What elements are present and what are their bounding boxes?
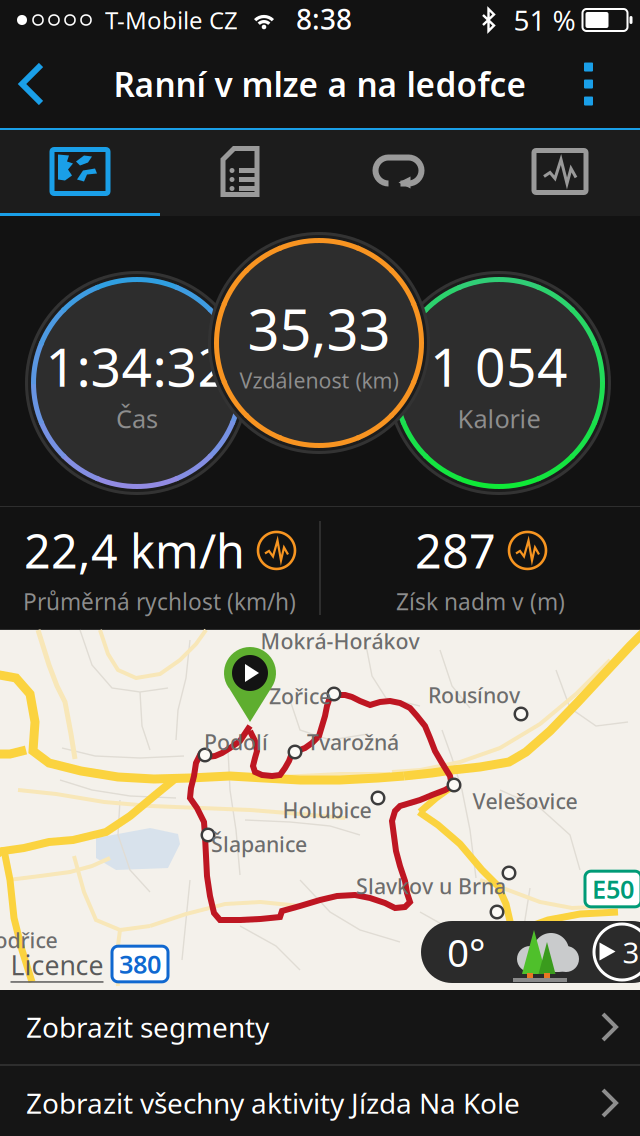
staticText: 22,4 km/h	[24, 519, 245, 581]
staticText: 3	[622, 932, 639, 971]
staticText: 1 054	[430, 331, 568, 402]
staticText: T-Mobile CZ	[105, 4, 238, 36]
button[interactable]: Map	[0, 130, 160, 213]
staticText: Získ nadm v (m)	[396, 586, 565, 616]
staticText: Kalorie	[457, 402, 540, 435]
button[interactable]: More options	[554, 40, 640, 128]
staticText: odřice	[0, 926, 57, 954]
staticText: Slavkov u Brna	[356, 872, 506, 900]
staticText: Licence	[10, 947, 103, 983]
button[interactable]: Graphs	[480, 130, 640, 213]
staticText: Velešovice	[472, 787, 577, 815]
staticText: Mokrá-Horákov	[260, 627, 419, 655]
staticText: 380	[119, 947, 161, 981]
staticText: Zobrazit všechny aktivity Jízda Na Kole	[26, 1084, 520, 1122]
staticText: 1:34:32	[45, 331, 228, 402]
staticText: Vzdálenost (km)	[239, 366, 398, 394]
staticText: E50	[592, 872, 634, 906]
staticText: Holubice	[282, 796, 371, 824]
staticText: 51 %	[513, 1, 575, 39]
button[interactable]: Back	[0, 40, 70, 128]
staticText: Tvarožná	[307, 728, 399, 756]
staticText: Čas	[116, 402, 158, 435]
staticText: Rousínov	[428, 681, 520, 709]
staticText: 287	[415, 519, 496, 581]
staticText: Šlapanice	[211, 830, 307, 858]
staticText: Zořice	[269, 682, 331, 710]
staticText: 35,33	[247, 292, 390, 366]
staticText: Ranní v mlze a na ledofce	[113, 62, 526, 106]
button[interactable]: Zobrazit všechny aktivity Jízda Na Kole	[0, 1066, 640, 1136]
staticText: 0°	[447, 926, 486, 978]
staticText: Zobrazit segmenty	[26, 1008, 269, 1046]
staticText: 8:38	[296, 0, 352, 38]
staticText: Průměrná rychlost (km/h)	[23, 586, 296, 616]
button[interactable]: Details	[160, 130, 320, 213]
button[interactable]: Zobrazit segmenty	[0, 990, 640, 1064]
button[interactable]: Laps	[320, 130, 480, 213]
staticText: Podolí	[204, 728, 268, 756]
